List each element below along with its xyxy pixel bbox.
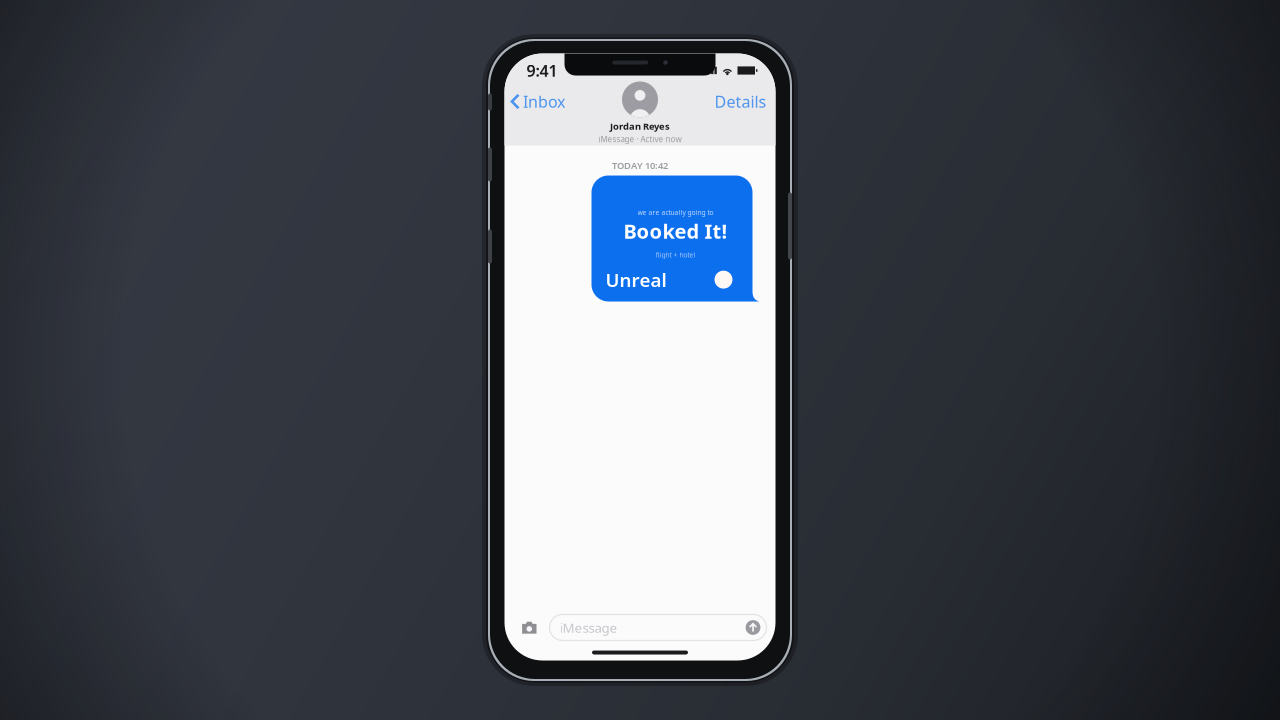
button[interactable]: Jordan Reyes xyxy=(580,84,700,141)
staticText: flight + hotel xyxy=(655,250,695,259)
staticText: Details xyxy=(714,91,766,112)
button[interactable]: Inbox xyxy=(504,90,573,112)
staticText: iMessage · Active now xyxy=(598,134,681,144)
staticText: we are actually going to xyxy=(637,208,713,217)
staticText: iMessage xyxy=(559,619,617,636)
staticText: TODAY 10:42 xyxy=(612,159,668,172)
staticText: 9:41 xyxy=(526,60,557,81)
button[interactable]: Details xyxy=(705,90,775,112)
staticText: Inbox xyxy=(523,91,565,112)
button[interactable]: Camera xyxy=(516,614,542,640)
staticText: Booked It! xyxy=(623,218,727,244)
staticText: Jordan Reyes xyxy=(610,120,670,132)
button[interactable]: Send xyxy=(743,618,762,637)
staticText: Unreal xyxy=(605,267,666,292)
